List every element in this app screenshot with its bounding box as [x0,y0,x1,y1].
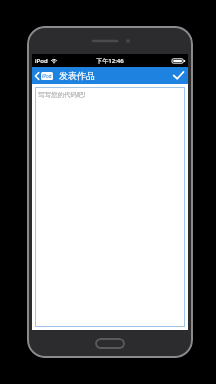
button[interactable]: Publish [169,67,188,84]
button[interactable]: 写写您的代码吧! [35,87,185,327]
button[interactable]: Back [32,67,56,84]
staticText: iPod [42,73,52,79]
staticText: 下午12:46 [96,57,124,65]
button[interactable]: Home [95,338,125,349]
staticText: 发表作品 [59,70,95,81]
staticText: 写写您的代码吧! [38,90,86,99]
staticText: iPod [35,57,48,65]
